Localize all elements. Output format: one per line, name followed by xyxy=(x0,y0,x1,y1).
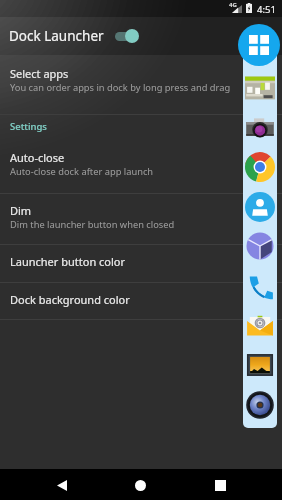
button[interactable]: Home xyxy=(120,470,161,500)
button[interactable]: Music xyxy=(245,390,275,420)
button[interactable]: Recent apps xyxy=(200,470,241,500)
button[interactable]: Launcher button color xyxy=(0,245,282,282)
staticText: Settings xyxy=(10,120,47,133)
button[interactable]: Dock background color xyxy=(0,283,282,319)
staticText: Dim the launcher button when closed xyxy=(10,218,175,231)
button[interactable]: Auto-close xyxy=(0,140,282,193)
staticText: 4:51 xyxy=(257,3,276,16)
staticText: Select apps xyxy=(10,66,69,81)
button[interactable]: Contacts xyxy=(245,192,275,222)
staticText: 4G xyxy=(229,1,237,9)
staticText: Dim xyxy=(10,203,32,218)
button[interactable]: Camera xyxy=(245,113,275,143)
button[interactable]: Dim xyxy=(0,194,282,244)
button[interactable]: Select apps xyxy=(0,55,282,114)
button[interactable]: Email xyxy=(245,311,275,341)
staticText: Launcher button color xyxy=(10,254,126,269)
button[interactable]: Phone xyxy=(245,271,275,301)
button[interactable]: Gallery xyxy=(245,350,275,380)
button[interactable]: Drive xyxy=(245,231,275,261)
button[interactable]: Open launcher xyxy=(238,24,280,66)
button[interactable]: Play Store xyxy=(245,73,275,103)
staticText: Auto-close dock after app launch xyxy=(10,165,154,178)
staticText: Dock background color xyxy=(10,292,130,307)
staticText: You can order apps in dock by long press… xyxy=(10,81,231,94)
staticText: Dock Launcher xyxy=(9,27,104,45)
button[interactable]: Enable Dock Launcher xyxy=(113,25,147,47)
staticText: Auto-close xyxy=(10,150,65,165)
button[interactable]: Back xyxy=(41,470,82,500)
button[interactable]: Chrome xyxy=(245,152,275,182)
